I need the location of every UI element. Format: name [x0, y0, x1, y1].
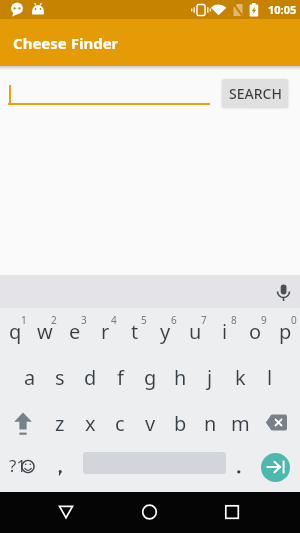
staticText: 8	[231, 313, 237, 327]
button[interactable]	[0, 400, 45, 446]
button[interactable]: SEARCH	[222, 79, 288, 107]
button[interactable]	[48, 446, 72, 492]
button[interactable]: v	[135, 400, 165, 446]
button[interactable]: u	[180, 308, 210, 354]
staticText: s	[55, 364, 65, 391]
button[interactable]	[50, 496, 82, 529]
button[interactable]: t	[120, 308, 150, 354]
staticText: 1	[21, 313, 27, 327]
button[interactable]: h	[165, 354, 195, 400]
staticText: u	[189, 318, 202, 345]
button[interactable]: n	[195, 400, 225, 446]
button[interactable]: a	[15, 354, 45, 400]
staticText: r	[101, 318, 110, 345]
staticText: x	[85, 410, 96, 437]
staticText: d	[84, 364, 97, 391]
button[interactable]	[134, 496, 166, 529]
staticText: n	[204, 410, 217, 437]
staticText: SEARCH	[229, 84, 282, 103]
button[interactable]: s	[45, 354, 75, 400]
button[interactable]: o	[240, 308, 270, 354]
staticText: e	[69, 318, 81, 345]
button[interactable]: i	[210, 308, 240, 354]
staticText: 4	[111, 313, 117, 327]
button[interactable]: ?1	[0, 446, 42, 492]
staticText: j	[207, 364, 213, 391]
staticText: k	[235, 364, 246, 391]
staticText: Cheese Finder	[13, 33, 119, 53]
staticText: t	[131, 318, 139, 345]
staticText: h	[174, 364, 187, 391]
staticText: 2	[51, 313, 57, 327]
button[interactable]: e	[60, 308, 90, 354]
button[interactable]: f	[105, 354, 135, 400]
staticText: 10:05	[268, 2, 297, 17]
button[interactable]	[255, 400, 300, 446]
button[interactable]: g	[135, 354, 165, 400]
staticText: a	[24, 364, 36, 391]
staticText: 7	[201, 313, 207, 327]
staticText: ?1	[9, 454, 27, 477]
staticText: z	[55, 410, 65, 437]
staticText: g	[144, 364, 157, 391]
button[interactable]: w	[30, 308, 60, 354]
button[interactable]: k	[225, 354, 255, 400]
staticText: w	[37, 318, 53, 345]
staticText: l	[267, 364, 273, 391]
staticText: o	[249, 318, 262, 345]
button[interactable]: z	[45, 400, 75, 446]
button[interactable]: j	[195, 354, 225, 400]
button[interactable]: m	[225, 400, 255, 446]
staticText: 3	[81, 313, 87, 327]
staticText: q	[9, 318, 22, 345]
button[interactable]	[270, 277, 298, 306]
staticText: f	[117, 364, 124, 391]
staticText: v	[145, 410, 156, 437]
staticText: p	[279, 318, 292, 345]
staticText: i	[222, 318, 228, 345]
button[interactable]	[216, 496, 248, 529]
button[interactable]: x	[75, 400, 105, 446]
button[interactable]	[261, 453, 290, 482]
staticText: 0	[291, 313, 297, 327]
staticText: c	[115, 410, 125, 437]
button[interactable]	[228, 446, 252, 492]
button[interactable]: q	[0, 308, 30, 354]
button[interactable]: b	[165, 400, 195, 446]
staticText: 6	[171, 313, 177, 327]
button[interactable]: d	[75, 354, 105, 400]
staticText: m	[231, 410, 250, 437]
staticText: 9	[261, 313, 267, 327]
button[interactable]	[8, 80, 210, 105]
button[interactable]: p	[270, 308, 300, 354]
button[interactable]: y	[150, 308, 180, 354]
button[interactable]: c	[105, 400, 135, 446]
staticText: b	[174, 410, 187, 437]
staticText: 5	[141, 313, 147, 327]
button[interactable]: r	[90, 308, 120, 354]
staticText: y	[160, 318, 171, 345]
button[interactable]: l	[255, 354, 285, 400]
